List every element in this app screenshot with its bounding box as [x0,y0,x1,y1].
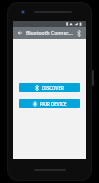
button[interactable]: Bluetooth settings [74,29,83,38]
button[interactable]: PAIR DEVICE [19,99,80,108]
button[interactable]: DISCOVER [19,83,80,92]
staticText: PAIR DEVICE [40,101,67,107]
staticText: DISCOVER [42,85,64,91]
staticText: Bluetooth Connection [26,30,74,37]
button[interactable]: Navigate up [16,29,24,37]
